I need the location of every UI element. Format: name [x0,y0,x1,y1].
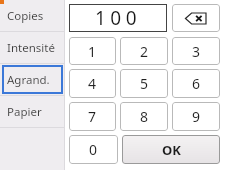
staticText: OK [162,141,181,159]
staticText: 2 [140,42,149,61]
staticText: 8 [140,107,149,126]
button[interactable]: 0 [69,135,118,164]
staticText: 6 [192,74,201,93]
staticText: 1 [88,42,97,61]
staticText: 0 [89,140,98,159]
button[interactable]: 7 [69,102,116,131]
button[interactable]: Intensité [0,32,64,63]
staticText: 100 [95,5,142,31]
staticText: Intensité [7,40,55,56]
button[interactable]: Copies [0,0,64,31]
button[interactable]: Backspace [172,4,220,32]
button[interactable]: Papier [0,96,64,127]
button[interactable]: 2 [120,37,168,65]
button[interactable]: 4 [69,69,116,98]
button[interactable]: Agrand. [0,64,64,95]
staticText: 7 [88,107,97,126]
button[interactable]: 5 [120,69,168,98]
staticText: 4 [88,74,97,93]
button[interactable]: 1 [69,37,116,65]
button[interactable]: 3 [172,37,220,65]
button[interactable]: OK [122,135,220,164]
staticText: Agrand. [7,72,50,88]
staticText: Copies [7,8,44,24]
button[interactable]: 9 [172,102,220,131]
button[interactable]: 6 [172,69,220,98]
button[interactable]: 8 [120,102,168,131]
staticText: 9 [192,107,201,126]
staticText: 3 [192,42,201,61]
staticText: 5 [140,74,149,93]
staticText: Papier [7,104,42,120]
